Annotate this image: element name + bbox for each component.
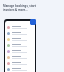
button[interactable]: App icon <box>30 19 36 25</box>
button[interactable] <box>5 24 35 30</box>
button[interactable] <box>5 54 35 60</box>
button[interactable] <box>5 60 35 66</box>
button[interactable] <box>5 66 35 72</box>
button[interactable] <box>5 30 35 36</box>
staticText: Manage bookings, start invoices & more..… <box>3 4 38 12</box>
button[interactable] <box>5 48 35 54</box>
button[interactable] <box>5 42 35 48</box>
button[interactable] <box>5 36 35 42</box>
